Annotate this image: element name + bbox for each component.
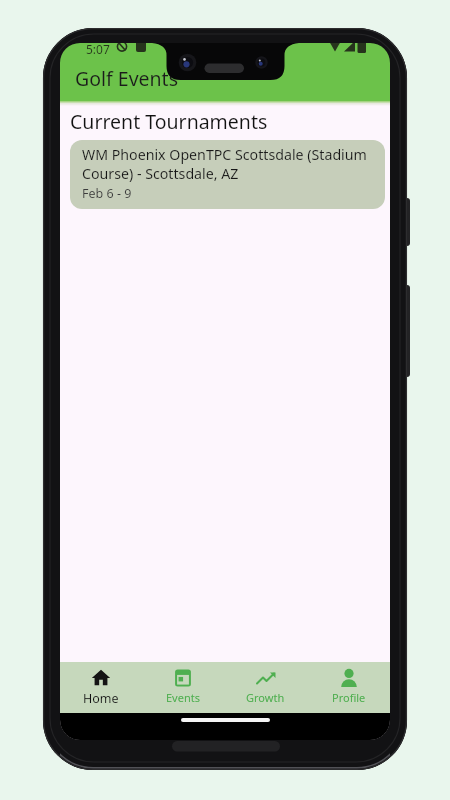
button[interactable]: Growth [224,662,307,713]
staticText: 5:07 [86,41,110,57]
staticText: Growth [246,690,285,705]
staticText: Home [83,690,119,707]
button[interactable]: Profile [307,662,390,713]
button[interactable]: Home [60,662,142,713]
staticText: Feb 6 - 9 [82,185,132,202]
button[interactable]: WM Phoenix OpenTPC Scottsdale (Stadium C… [70,140,385,209]
staticText: Profile [332,690,366,705]
staticText: Golf Events [75,65,178,92]
staticText: WM Phoenix OpenTPC Scottsdale (Stadium C… [82,145,367,183]
staticText: Current Tournaments [70,108,268,135]
staticText: Events [166,690,200,705]
button[interactable]: Events [142,662,224,713]
